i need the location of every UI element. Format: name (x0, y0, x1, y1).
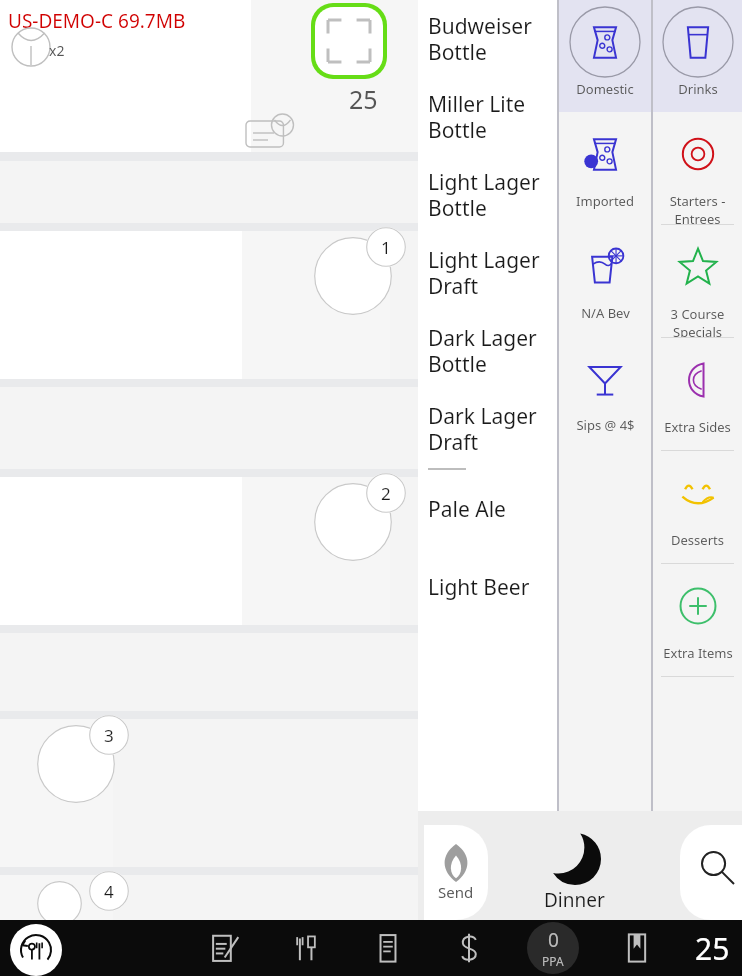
button[interactable]: Sips @ 4$ (559, 336, 651, 448)
staticText: Extra Items (663, 644, 733, 662)
staticText: 3 (104, 724, 114, 747)
button[interactable]: Dark Lager Bottle (418, 312, 557, 390)
staticText: Sips @ 4$ (576, 416, 635, 434)
staticText: 25 (695, 928, 730, 969)
staticText: US-DEMO-C 69.7MB (8, 8, 186, 34)
staticText: 25 (349, 82, 378, 116)
button[interactable]: Light Lager Draft (418, 234, 557, 312)
button[interactable]: 25 (695, 928, 730, 969)
staticText: 4 (104, 880, 114, 903)
button[interactable]: US-DEMO-C 69.7MB (0, 0, 418, 152)
staticText: 3 Course Specials (653, 305, 742, 337)
button[interactable]: Starters - Entrees (653, 112, 742, 224)
staticText: Starters - Entrees (653, 192, 742, 224)
staticText: Pale Ale (428, 495, 506, 524)
button[interactable]: Domestic (559, 0, 651, 112)
button[interactable]: Extra Items (653, 564, 742, 676)
staticText: Budweiser Bottle (428, 12, 532, 67)
button[interactable]: Budweiser Bottle (418, 0, 557, 78)
button[interactable]: 2 (0, 477, 418, 625)
button[interactable]: Cutlery (282, 924, 330, 972)
button[interactable]: Imported (559, 112, 651, 224)
staticText: Send (438, 882, 474, 902)
button[interactable]: Dinner (544, 833, 605, 913)
button[interactable]: 4 (0, 875, 418, 920)
button[interactable]: Scan (311, 3, 387, 79)
button[interactable]: Bookmark (613, 924, 661, 972)
staticText: Light Lager Draft (428, 246, 540, 301)
button[interactable]: Payment (445, 924, 493, 972)
staticText: Drinks (678, 80, 718, 98)
button[interactable]: Miller Lite Bottle (418, 78, 557, 156)
button[interactable]: Receipt (364, 924, 412, 972)
staticText: Dark Lager Bottle (428, 324, 537, 379)
staticText: N/A Bev (581, 304, 630, 322)
button[interactable]: Home (10, 924, 62, 976)
staticText: Light Beer (428, 573, 530, 602)
button[interactable]: Send (424, 825, 488, 920)
button[interactable]: Light Beer (418, 548, 557, 626)
staticText: PPA (542, 953, 564, 969)
button[interactable]: Light Lager Bottle (418, 156, 557, 234)
staticText: Extra Sides (664, 418, 731, 436)
staticText: x2 (49, 41, 65, 60)
button[interactable]: 0 (527, 922, 579, 974)
button[interactable]: Drinks (653, 0, 742, 112)
staticText: Light Lager Bottle (428, 168, 540, 223)
staticText: Desserts (671, 531, 724, 549)
staticText: Miller Lite Bottle (428, 90, 526, 145)
button[interactable]: Extra Sides (653, 338, 742, 450)
button[interactable]: 3 (0, 719, 418, 867)
button[interactable]: Dark Lager Draft (418, 390, 557, 468)
button[interactable]: Pale Ale (418, 470, 557, 548)
button[interactable]: 1 (0, 231, 418, 379)
staticText: 2 (381, 482, 391, 505)
staticText: Imported (576, 192, 634, 210)
button[interactable]: Notes (200, 924, 248, 972)
staticText: Domestic (576, 80, 634, 98)
button[interactable]: 3 Course Specials (653, 225, 742, 337)
button[interactable]: N/A Bev (559, 224, 651, 336)
staticText: 0 (548, 927, 559, 953)
button[interactable]: Desserts (653, 451, 742, 563)
staticText: Dark Lager Draft (428, 402, 537, 457)
button[interactable]: Search (680, 825, 742, 920)
staticText: Dinner (544, 887, 605, 913)
staticText: 1 (381, 236, 391, 259)
